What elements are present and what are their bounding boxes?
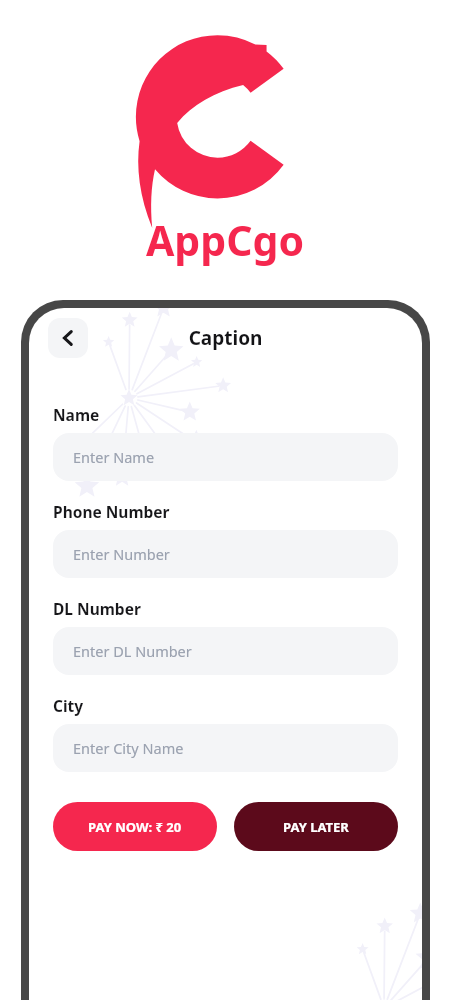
staticText: Enter Number [73, 544, 170, 564]
button[interactable]: Enter City Name [53, 724, 398, 772]
button[interactable]: PAY LATER [234, 802, 398, 851]
button[interactable]: Back [48, 318, 88, 358]
staticText: City [53, 695, 84, 716]
button[interactable]: Enter Name [53, 433, 398, 481]
staticText: Enter Name [73, 447, 155, 467]
staticText: Enter City Name [73, 738, 184, 758]
staticText: Phone Number [53, 501, 170, 522]
staticText: DL Number [53, 598, 141, 619]
staticText: Name [53, 404, 100, 425]
staticText: PAY LATER [283, 818, 349, 836]
staticText: AppCgo [0, 212, 450, 268]
button[interactable]: Enter Number [53, 530, 398, 578]
button[interactable]: Enter DL Number [53, 627, 398, 675]
staticText: PAY NOW: ₹ 20 [88, 818, 182, 836]
button[interactable]: PAY NOW: ₹ 20 [53, 802, 217, 851]
staticText: Caption [29, 325, 422, 351]
staticText: Enter DL Number [73, 641, 192, 661]
